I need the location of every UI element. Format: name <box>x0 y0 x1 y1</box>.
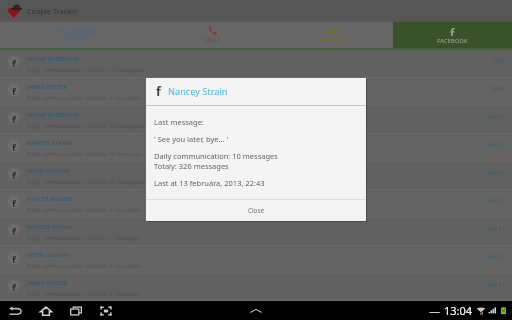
button[interactable]: f <box>0 134 512 162</box>
button[interactable]: f <box>0 50 512 78</box>
button[interactable]: Close <box>146 200 366 221</box>
staticText: f <box>12 141 16 151</box>
staticText: f <box>12 197 16 207</box>
staticText: MARIA ROBINSON <box>27 111 79 119</box>
button[interactable]: f <box>0 78 512 106</box>
staticText: KEVIN GRIFFIN <box>27 167 69 175</box>
staticText: Feb 13 <box>488 113 505 120</box>
button[interactable]: Screenshot <box>96 301 116 320</box>
staticText: Feb 13 <box>488 141 505 148</box>
staticText: Close <box>248 206 264 215</box>
staticText: f <box>12 253 16 263</box>
staticText: JAMES FOSTER <box>27 83 68 91</box>
button[interactable]: Home <box>36 301 56 320</box>
staticText: Daily communication contains 10 messages… <box>27 150 146 158</box>
staticText: Feb 13 <box>488 169 505 176</box>
button[interactable]: f <box>0 106 512 134</box>
staticText: f <box>12 225 16 235</box>
staticText: MESSAGES <box>318 36 348 44</box>
staticText: Daily communication contains 17 messages… <box>27 66 146 74</box>
staticText: Daily communication contains 4 messages. <box>27 290 142 298</box>
staticText: Daily communication contains 4 messages. <box>27 94 142 102</box>
staticText: Last message: <box>154 117 204 127</box>
staticText: Daily communication contains 1 messages. <box>27 234 142 242</box>
staticText: f <box>156 83 161 100</box>
button[interactable]: f <box>393 22 512 48</box>
staticText: Daily communication contains 25 messages… <box>27 178 146 186</box>
button[interactable]: f <box>0 218 512 246</box>
staticText: MARIA ROBINSON <box>27 55 79 63</box>
staticText: KEVIN GRIFFIN <box>27 251 69 259</box>
staticText: NANCEY STRAIN <box>27 223 73 231</box>
staticText: f <box>12 85 16 95</box>
staticText: CALLS <box>203 36 221 44</box>
staticText: JAMES FOSTER <box>27 279 68 287</box>
staticText: NANCEY STRAIN <box>27 139 73 147</box>
staticText: Feb 11 <box>488 281 505 288</box>
button[interactable]: f <box>0 274 512 301</box>
staticText: 12:28 <box>491 57 505 64</box>
staticText: 00:04 <box>491 85 505 92</box>
staticText: Feb 11 <box>488 225 505 232</box>
button[interactable]: f <box>0 162 512 190</box>
button[interactable]: MESSAGES <box>272 22 393 48</box>
staticText: f <box>12 57 16 67</box>
button[interactable]: Recent apps <box>66 301 86 320</box>
staticText: Feb 11 <box>488 197 505 204</box>
staticText: Daily communication contains 32 messages… <box>27 122 146 130</box>
staticText: Daily communication contains 9 messages. <box>27 262 142 270</box>
staticText: FACEBOOK <box>437 37 468 45</box>
staticText: 13:04 <box>444 303 473 318</box>
staticText: Daily communication contains 2 messages. <box>27 206 142 214</box>
staticText: f <box>450 26 455 36</box>
button[interactable]: f <box>0 190 512 218</box>
staticText: Couple Tracker <box>27 6 79 16</box>
staticText: — <box>429 303 440 318</box>
staticText: ASHLEY ROGERS <box>27 195 73 203</box>
button[interactable]: YOUR PARTNER HISTORY <box>0 22 152 48</box>
button[interactable]: CALLS <box>152 22 272 48</box>
staticText: YOUR PARTNER HISTORY <box>54 28 98 42</box>
button[interactable]: f <box>0 246 512 274</box>
staticText: Last at 13 februára, 2013, 22:43 <box>154 178 265 188</box>
staticText: f <box>12 113 16 123</box>
staticText: f <box>12 169 16 179</box>
staticText: Nancey Strain <box>168 85 228 98</box>
staticText: Totaly: 326 messages <box>154 161 229 171</box>
staticText: Daily communication: 10 messages <box>154 151 278 161</box>
staticText: Feb 11 <box>488 253 505 260</box>
button[interactable]: Back <box>6 301 26 320</box>
staticText: ' See you later, bye... ' <box>154 134 229 144</box>
staticText: f <box>12 281 16 291</box>
